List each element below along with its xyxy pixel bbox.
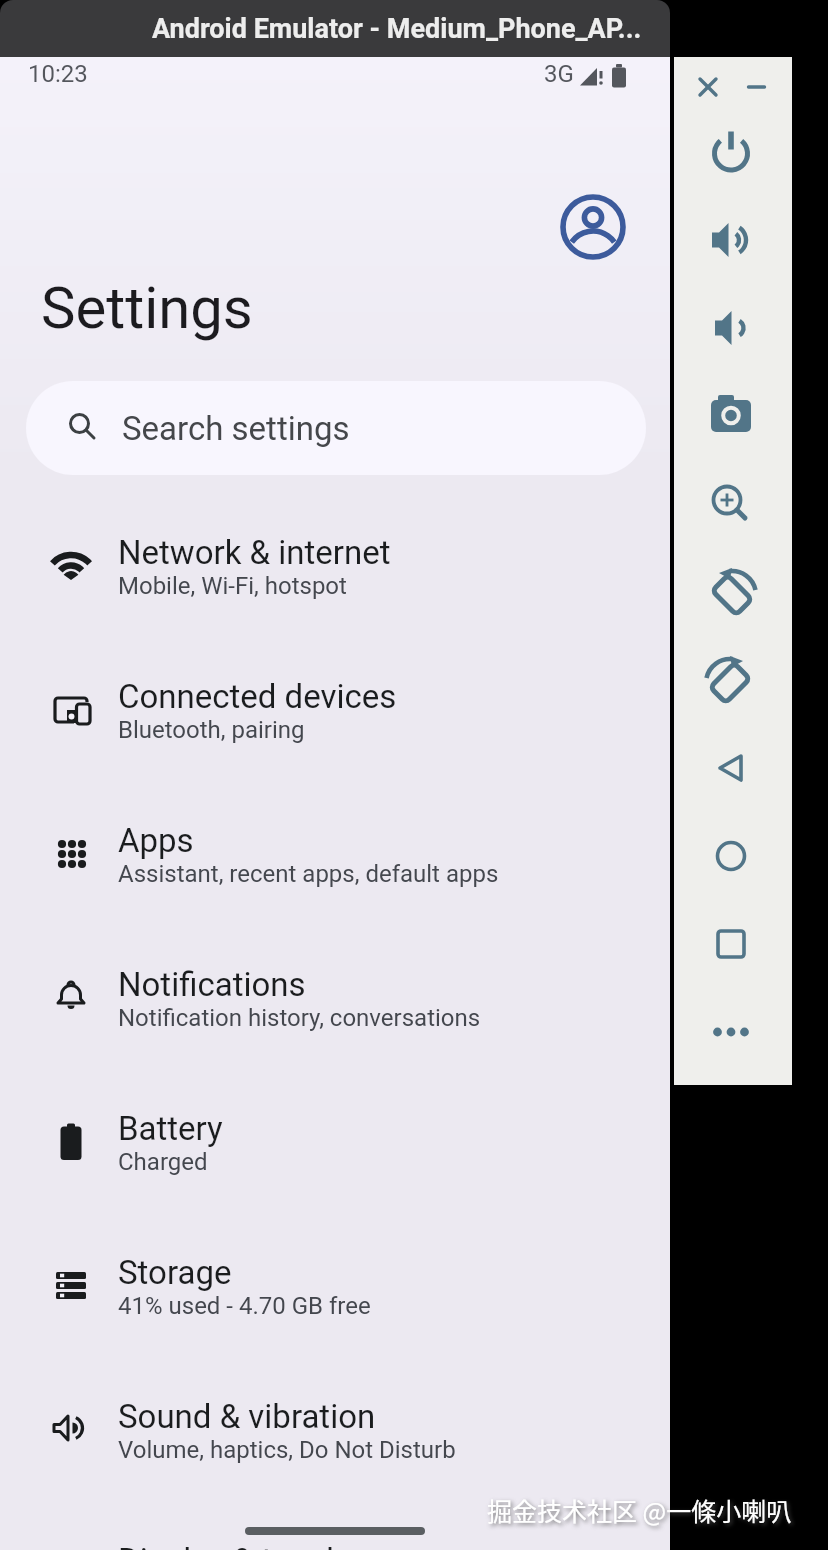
button[interactable] — [707, 568, 755, 616]
staticText: Notifications — [118, 965, 306, 1004]
staticText: Bluetooth, pairing — [118, 716, 305, 744]
button[interactable] — [737, 67, 777, 107]
button[interactable] — [707, 832, 755, 880]
button[interactable]: Sound & vibration — [0, 1358, 670, 1502]
staticText: Assistant, recent apps, default apps — [118, 860, 499, 888]
button[interactable] — [688, 67, 728, 107]
button[interactable] — [707, 1008, 755, 1056]
staticText: Sound & vibration — [118, 1397, 376, 1436]
staticText: Battery — [118, 1109, 223, 1148]
staticText: Charged — [118, 1148, 208, 1176]
button[interactable]: Display & touch — [0, 1502, 670, 1550]
button[interactable]: Search settings — [26, 381, 646, 475]
button[interactable] — [707, 920, 755, 968]
button[interactable] — [707, 304, 755, 352]
staticText: Android Emulator - Medium_Phone_AP... — [152, 13, 642, 45]
button[interactable] — [707, 656, 755, 704]
button[interactable]: Notifications — [0, 926, 670, 1070]
staticText: Mobile, Wi-Fi, hotspot — [118, 572, 347, 600]
button[interactable] — [707, 480, 755, 528]
button[interactable] — [707, 744, 755, 792]
button[interactable] — [707, 392, 755, 440]
button[interactable]: Storage — [0, 1214, 670, 1358]
button[interactable] — [707, 216, 755, 264]
staticText: Display & touch — [118, 1541, 345, 1550]
staticText: Connected devices — [118, 677, 397, 716]
staticText: 10:23 — [28, 60, 88, 88]
button[interactable]: Network & internet — [0, 494, 670, 638]
staticText: Network & internet — [118, 533, 391, 572]
button[interactable]: Apps — [0, 782, 670, 926]
staticText: Settings — [41, 274, 253, 342]
button[interactable]: Connected devices — [0, 638, 670, 782]
button[interactable] — [707, 128, 755, 176]
staticText: Search settings — [122, 409, 350, 448]
staticText: 掘金技术社区 @一條小喇叭 — [487, 1492, 792, 1528]
staticText: Volume, haptics, Do Not Disturb — [118, 1436, 456, 1464]
staticText: 41% used - 4.70 GB free — [118, 1292, 371, 1320]
staticText: Apps — [118, 821, 194, 860]
staticText: Notification history, conversations — [118, 1004, 481, 1032]
button[interactable]: Battery — [0, 1070, 670, 1214]
staticText: Storage — [118, 1253, 232, 1292]
staticText: 3G — [544, 60, 574, 88]
